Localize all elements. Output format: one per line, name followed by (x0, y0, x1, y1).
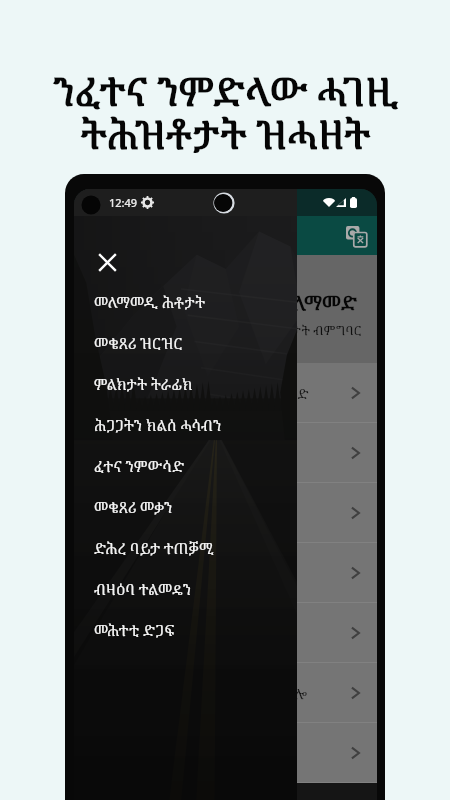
staticText: መቄጸሪ ዝርዝር ርአ (88, 444, 191, 463)
button[interactable]: Translate (343, 223, 369, 249)
staticText: ብዛዕባ ተልመዴን (94, 579, 192, 599)
staticText: ናይ መምርሒ ፍቓድ ፈተና ተለማመድ (88, 289, 357, 316)
staticText: መለማመዲ ሕቶታት (94, 292, 205, 312)
staticText: ትሕዝቶታት ዝሓዘት (81, 107, 370, 160)
staticText: ፈተና ንምውሳድ (94, 456, 185, 476)
staticText: መለማመዲ ሕቶታት ብምምራጽ ተለማመድ (88, 384, 309, 403)
button[interactable]: ፈተና ንምውሳድ (74, 445, 297, 486)
button[interactable]: ብዛዕባ ተልመዴን (74, 568, 297, 609)
staticText: ሕጋጋትን ክልሰ ሓሳብን (94, 415, 222, 435)
button[interactable]: ምልክታት ትራፊክ ተመልከት (74, 483, 377, 543)
button[interactable]: ፈተና ንምውሳድ ተዳሎ (74, 603, 377, 663)
staticText: መቄጸሪ መቃን (94, 497, 173, 517)
staticText: ምልክታት ትራፊክ ተመልከት (88, 504, 234, 523)
button[interactable]: ድሕረ ባይታ ተጠቓሚ (74, 527, 297, 568)
button[interactable]: መቄጸሪ ዝርዝር (74, 322, 297, 363)
staticText: ንፈተና ንምድላው ሓገዚ (53, 64, 398, 117)
button[interactable]: ድሕረ ባይታ ተጠቓሚ (74, 723, 377, 783)
staticText: መቄጸሪ ዝርዝር (94, 333, 183, 353)
button[interactable]: ምልክታት ትራፊክ (74, 363, 297, 404)
button[interactable]: መሕተቲ ድጋፍ (74, 609, 297, 650)
button[interactable]: መቄጸሪ ዝርዝር ርአ (74, 423, 377, 483)
staticText: ድሕረ ባይታ ተጠቓሚ (94, 538, 214, 558)
staticText: መሕተቲ ድጋፍ (94, 620, 175, 640)
staticText: ፈተና ንምውሳድ ተዳሎ (88, 624, 208, 643)
staticText: መቄጸሪ መቃን ተመልከት ኣብ ዝርዝር ዘሎ ሓበሬታን (88, 684, 337, 703)
button[interactable]: መቄጸሪ መቃን (74, 486, 297, 527)
staticText: ብቋንቋ ትግርኛ ዝተዳለወ መለማመዲ ሕቶታት ብምግባር (88, 321, 362, 339)
button[interactable]: Close (92, 247, 122, 277)
button[interactable]: ሕጋጋትን ክልሰ ሓሳብን (74, 404, 297, 445)
button[interactable]: መለማመዲ ሕቶታት ብምምራጽ ተለማመድ (74, 363, 377, 423)
button[interactable]: ሕጋጋትን ክልሰ ሓሳብን (74, 543, 377, 603)
staticText: 12:49 (109, 195, 138, 210)
button[interactable]: መቄጸሪ መቃን ተመልከት ኣብ ዝርዝር ዘሎ ሓበሬታን (74, 663, 377, 723)
staticText: ምልክታት ትራፊክ (94, 374, 193, 394)
button[interactable]: መለማመዲ ሕቶታት (74, 281, 297, 322)
